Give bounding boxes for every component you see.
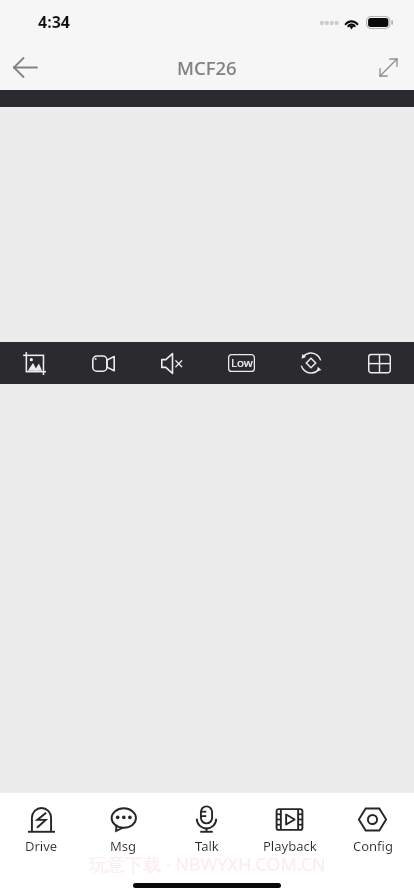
button[interactable]: Record [69,342,138,384]
staticText: Playback [263,837,317,855]
staticText: Low [231,355,253,371]
button[interactable]: Config [331,806,414,856]
staticText: Talk [195,837,219,855]
button[interactable]: Talk [165,806,248,856]
staticText: Config [353,837,393,855]
button[interactable]: Fullscreen [368,44,409,90]
button[interactable]: Snapshot [0,342,69,384]
staticText: Msg [110,837,137,855]
button[interactable]: Back [0,44,50,90]
staticText: Drive [25,837,58,855]
button[interactable]: Rotate [276,342,345,384]
button[interactable]: Playback [248,806,331,856]
button[interactable]: Mute [138,342,207,384]
button[interactable]: Drive [0,806,82,856]
button[interactable]: Split view [345,342,414,384]
staticText: 4:34 [38,11,70,33]
button[interactable]: Stream quality Low [207,342,276,384]
staticText: MCF26 [177,55,237,80]
staticText: 玩意下载 · NBWYXH.COM.CN [89,852,326,877]
button[interactable]: Msg [82,806,165,856]
